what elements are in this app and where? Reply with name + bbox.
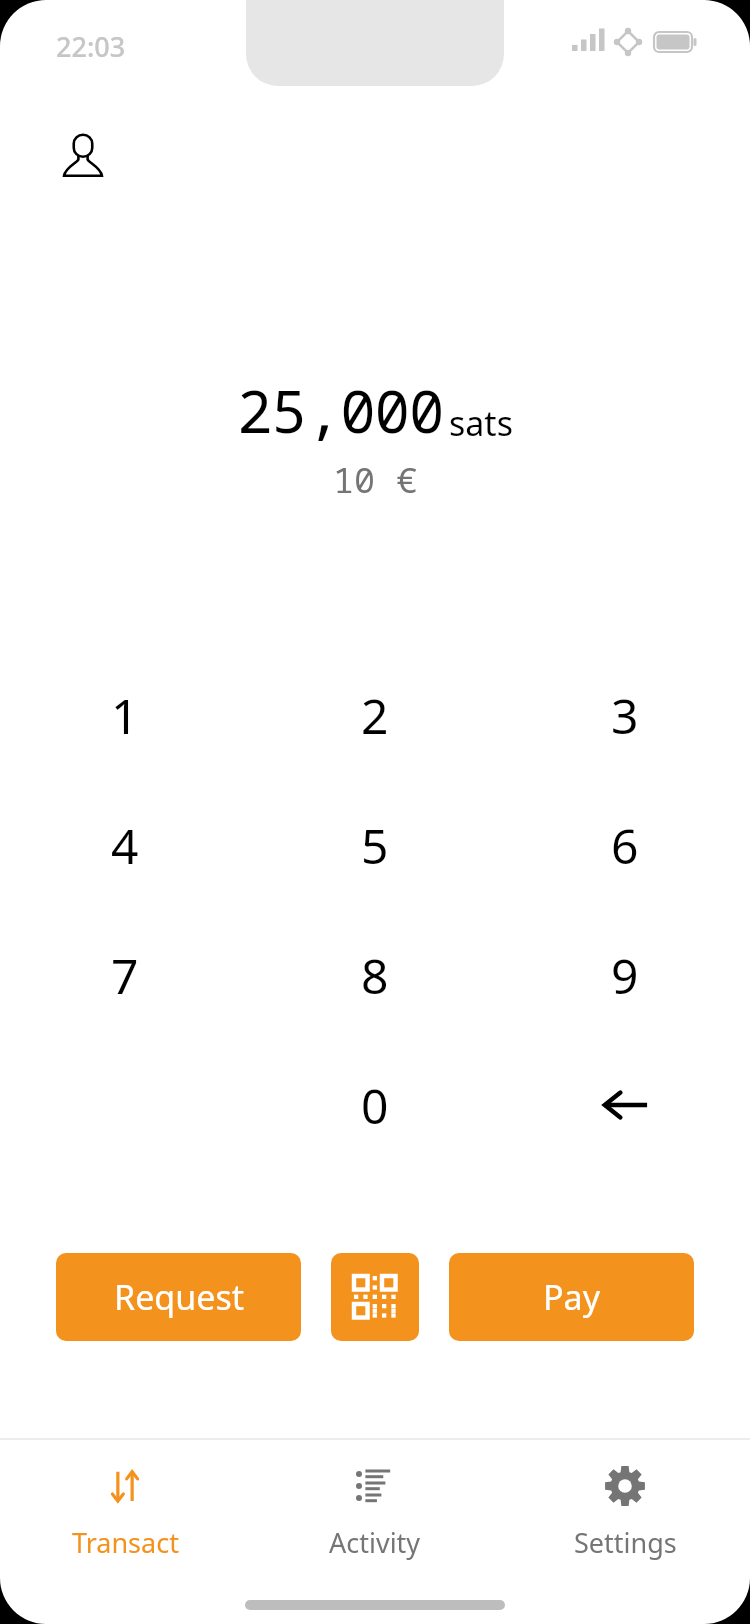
staticText: 6 — [611, 813, 639, 878]
button[interactable]: 8 — [250, 910, 500, 1040]
staticText: 25,000 — [237, 370, 444, 450]
button[interactable]: Request — [56, 1253, 301, 1341]
staticText: 10 € — [333, 456, 418, 504]
button[interactable]: 9 — [500, 910, 750, 1040]
staticText: Request — [114, 1274, 244, 1320]
staticText: 3 — [611, 683, 639, 748]
staticText: 5 — [361, 813, 389, 878]
button[interactable]: Scan QR code — [331, 1253, 419, 1341]
staticText: 7 — [111, 943, 139, 1008]
button[interactable]: Transact — [0, 1440, 250, 1582]
button[interactable]: 2 — [250, 650, 500, 780]
button[interactable]: 6 — [500, 780, 750, 910]
staticText: 4 — [111, 813, 139, 878]
staticText: Activity — [329, 1524, 421, 1561]
staticText: Pay — [543, 1274, 600, 1320]
button[interactable]: Activity — [250, 1440, 500, 1582]
button[interactable]: 1 — [0, 650, 250, 780]
button[interactable]: 5 — [250, 780, 500, 910]
button[interactable]: Backspace — [500, 1040, 750, 1170]
button[interactable]: 0 — [250, 1040, 500, 1170]
button[interactable]: 7 — [0, 910, 250, 1040]
staticText: 9 — [611, 943, 639, 1008]
staticText: sats — [449, 400, 513, 446]
button[interactable]: Settings — [500, 1440, 750, 1582]
staticText: 22:03 — [56, 28, 126, 65]
staticText: 8 — [361, 943, 389, 1008]
staticText: 2 — [361, 683, 389, 748]
button[interactable]: Profile — [56, 128, 110, 182]
staticText: 0 — [361, 1073, 389, 1138]
button[interactable]: Pay — [449, 1253, 694, 1341]
staticText: Transact — [72, 1524, 179, 1561]
button[interactable]: 4 — [0, 780, 250, 910]
button[interactable]: 3 — [500, 650, 750, 780]
staticText: Settings — [574, 1524, 677, 1561]
staticText: 1 — [111, 683, 139, 748]
